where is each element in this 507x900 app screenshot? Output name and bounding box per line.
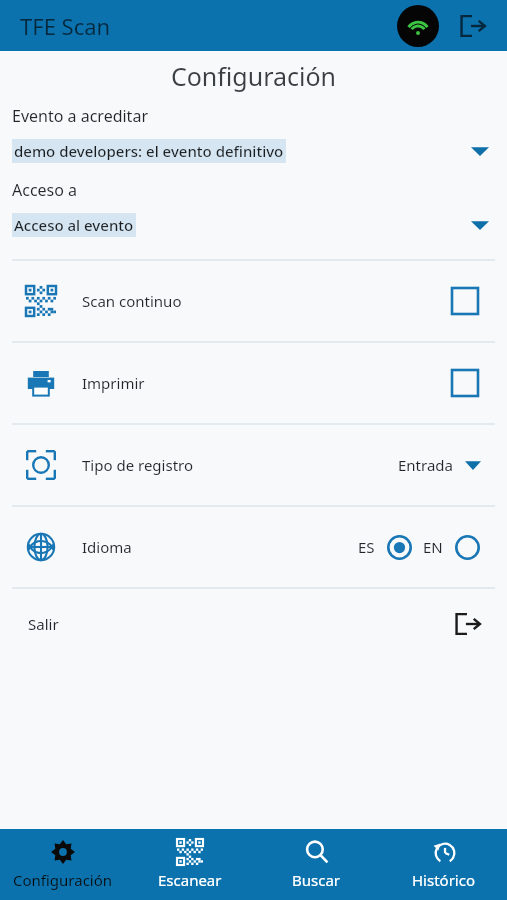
- staticText: ES: [358, 537, 375, 557]
- button[interactable]: Scan continuo: [0, 261, 507, 341]
- staticText: Evento a acreditar: [12, 105, 148, 127]
- staticText: Imprimir: [82, 373, 145, 393]
- button[interactable]: demo developers: el evento definitivo: [0, 139, 507, 163]
- button[interactable]: [385, 533, 413, 561]
- button[interactable]: Imprimir: [0, 343, 507, 423]
- button[interactable]: Idioma: [0, 507, 507, 587]
- button[interactable]: Cerrar sesión: [453, 6, 493, 46]
- staticText: Scan continuo: [82, 291, 182, 311]
- staticText: Histórico: [412, 870, 476, 890]
- button[interactable]: Acceso al evento: [0, 213, 507, 237]
- staticText: Entrada: [398, 455, 453, 475]
- button[interactable]: Toggle: [449, 285, 481, 317]
- button[interactable]: Buscar: [253, 829, 380, 900]
- button[interactable]: Conexión: [397, 5, 439, 47]
- staticText: Configuración: [0, 59, 507, 93]
- staticText: Acceso al evento: [14, 215, 134, 235]
- button[interactable]: Salir: [0, 589, 507, 659]
- staticText: Acceso a: [12, 179, 78, 201]
- button[interactable]: Toggle: [449, 367, 481, 399]
- staticText: Buscar: [292, 870, 341, 890]
- staticText: demo developers: el evento definitivo: [14, 141, 284, 161]
- staticText: Tipo de registro: [82, 455, 194, 475]
- staticText: TFE Scan: [20, 11, 111, 41]
- button[interactable]: Histórico: [380, 829, 507, 900]
- button[interactable]: [453, 533, 481, 561]
- button[interactable]: Escanear: [126, 829, 253, 900]
- staticText: EN: [423, 537, 443, 557]
- button[interactable]: Configuración: [0, 829, 126, 900]
- button[interactable]: Tipo de registro: [0, 425, 507, 505]
- staticText: Salir: [28, 614, 59, 634]
- staticText: Configuración: [13, 870, 113, 890]
- staticText: Idioma: [82, 537, 132, 557]
- staticText: Escanear: [158, 870, 222, 890]
